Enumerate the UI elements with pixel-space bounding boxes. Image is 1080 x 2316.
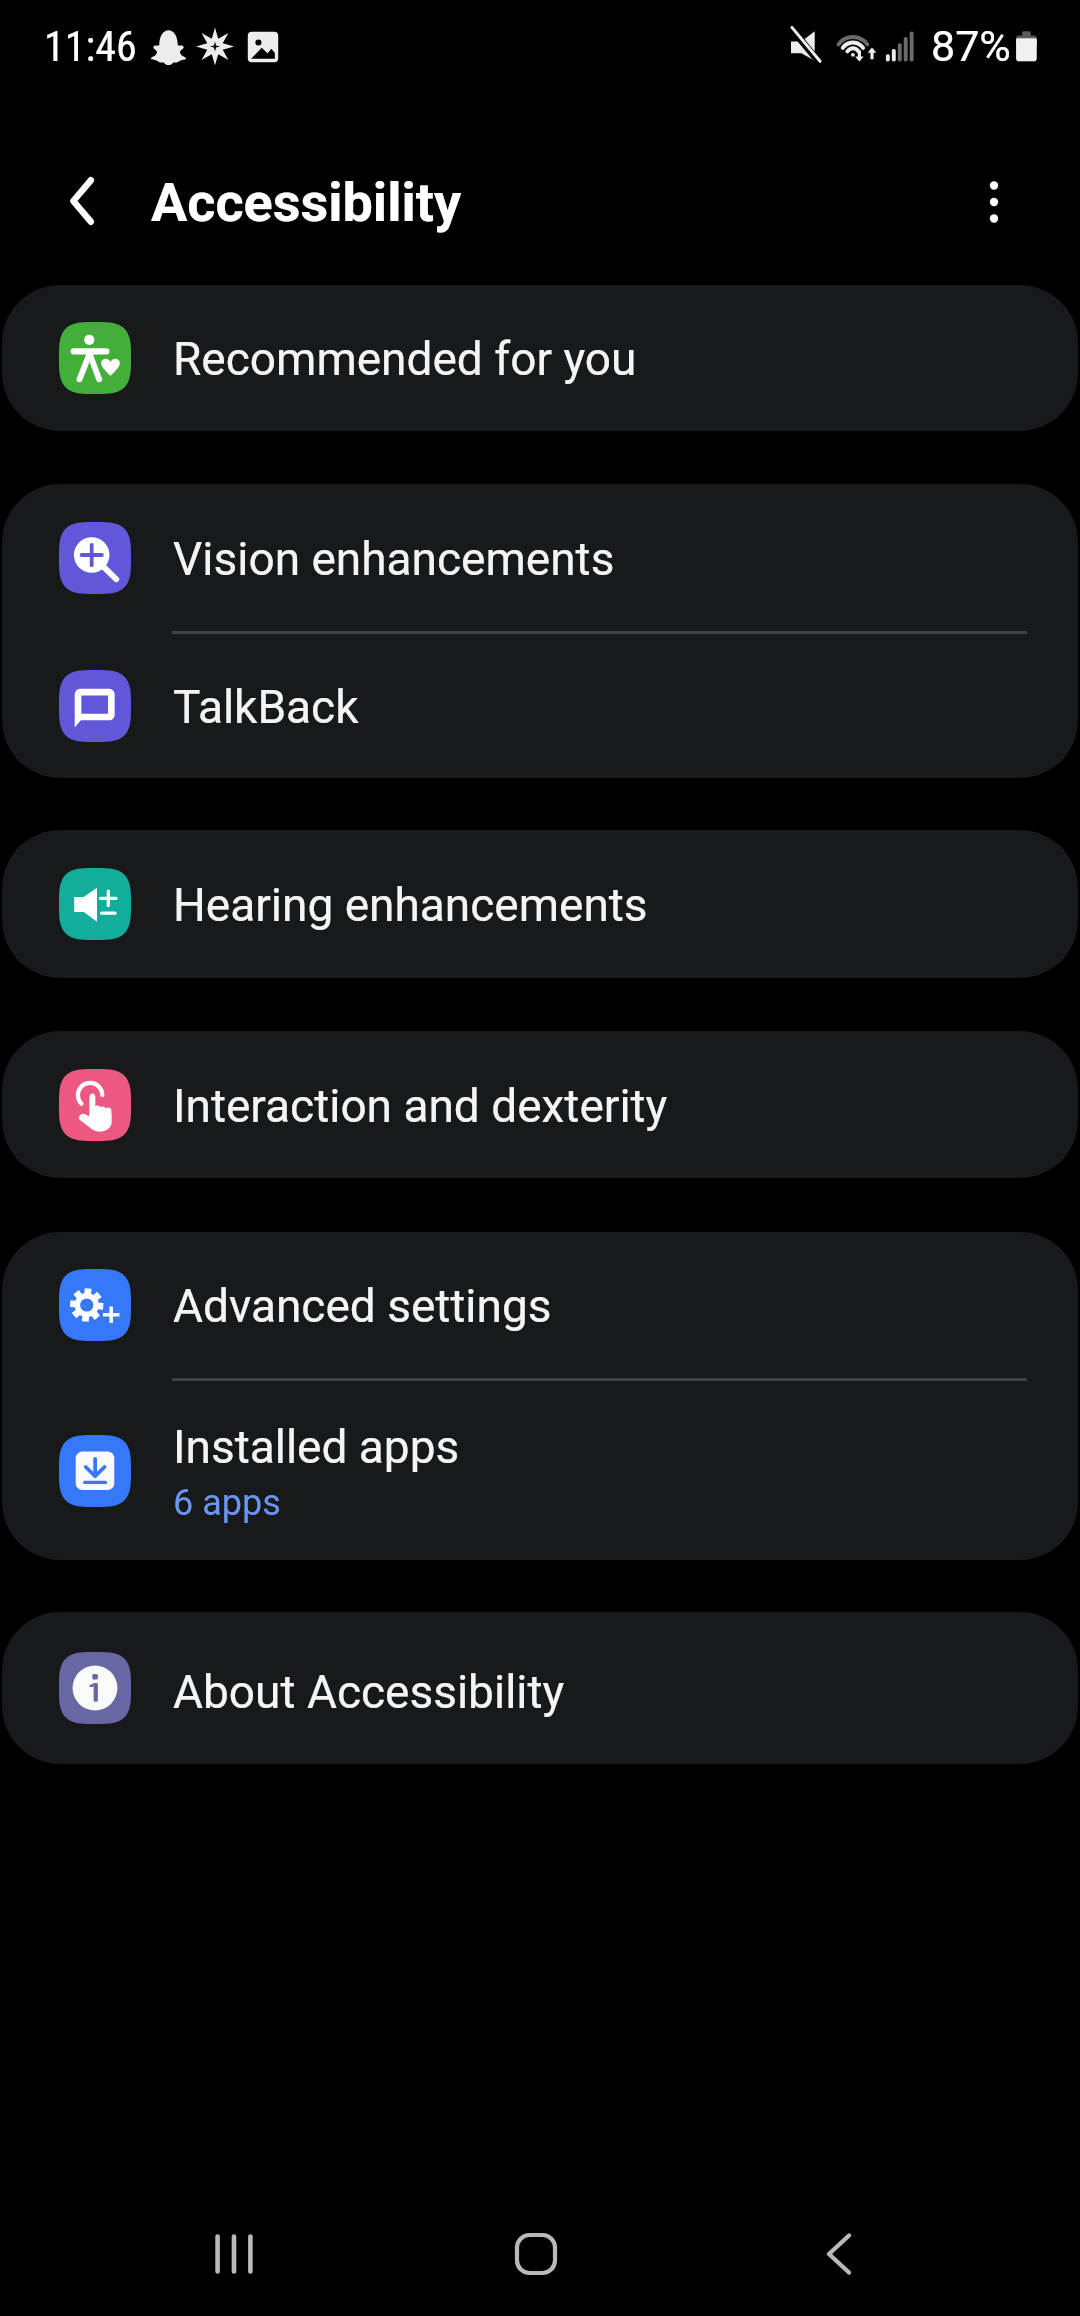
button[interactable]: Navigate up xyxy=(28,153,136,257)
staticText: Advanced settings xyxy=(173,1279,552,1333)
button[interactable]: Vision enhancements xyxy=(2,484,1078,631)
button[interactable]: Recent apps xyxy=(144,2174,324,2316)
button[interactable]: About Accessibility xyxy=(2,1612,1078,1764)
button[interactable]: Advanced settings xyxy=(2,1232,1078,1378)
staticText: Interaction and dexterity xyxy=(173,1079,668,1133)
staticText: TalkBack xyxy=(173,680,359,734)
staticText: 11:46 xyxy=(44,22,137,71)
staticText: Accessibility xyxy=(151,171,462,234)
button[interactable]: Back xyxy=(749,2174,929,2316)
button[interactable]: Hearing enhancements xyxy=(2,830,1078,978)
button[interactable]: Interaction and dexterity xyxy=(2,1031,1078,1178)
staticText: 87% xyxy=(931,21,1011,71)
staticText: 6 apps xyxy=(173,1482,281,1524)
staticText: Installed apps xyxy=(173,1420,460,1474)
button[interactable]: TalkBack xyxy=(2,634,1078,778)
button[interactable]: Home xyxy=(446,2174,626,2316)
staticText: Recommended for you xyxy=(173,332,637,386)
staticText: Vision enhancements xyxy=(173,532,615,586)
button[interactable]: Recommended for you xyxy=(2,285,1078,431)
button[interactable]: Installed apps xyxy=(2,1381,1078,1560)
staticText: About Accessibility xyxy=(173,1665,565,1719)
button[interactable]: More options xyxy=(940,153,1048,257)
staticText: Hearing enhancements xyxy=(173,878,648,932)
